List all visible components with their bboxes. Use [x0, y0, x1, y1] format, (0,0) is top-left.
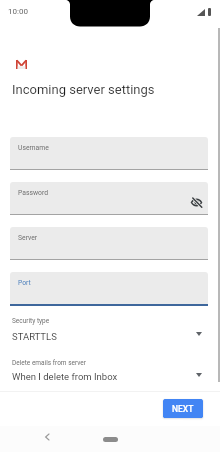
button[interactable]: Password [10, 182, 208, 215]
button[interactable]: Home [103, 437, 118, 442]
staticText: 10:00 [8, 7, 28, 16]
button[interactable]: Port [10, 272, 208, 306]
staticText: Server [18, 234, 38, 242]
staticText: Security type [12, 317, 50, 325]
button[interactable]: Server [10, 227, 208, 260]
button[interactable]: Back [39, 429, 55, 445]
staticText: Username [18, 144, 49, 152]
staticText: Incoming server settings [12, 82, 155, 97]
staticText: Password [18, 189, 49, 197]
staticText: STARTTLS [12, 331, 57, 342]
button[interactable] [10, 359, 208, 385]
button[interactable]: Show password [188, 194, 204, 210]
staticText: Delete emails from server [12, 359, 86, 367]
staticText: Port [18, 279, 31, 287]
button[interactable]: Username [10, 137, 208, 170]
button[interactable]: NEXT [163, 399, 203, 418]
button[interactable] [10, 317, 208, 343]
staticText: NEXT [172, 404, 194, 414]
staticText: When I delete from Inbox [12, 371, 118, 382]
